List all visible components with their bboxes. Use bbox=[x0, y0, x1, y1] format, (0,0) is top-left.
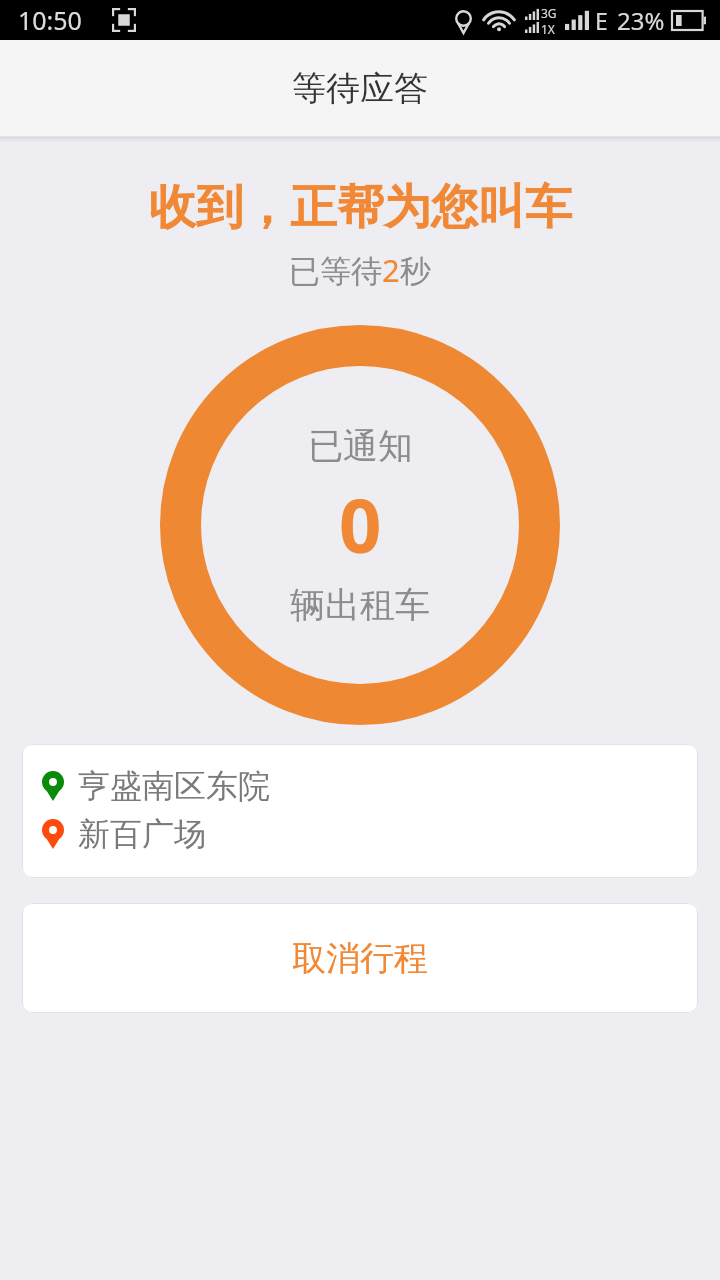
staticText: 已通知 bbox=[308, 424, 413, 468]
button[interactable]: 取消行程 bbox=[22, 903, 698, 1013]
staticText: 新百广场 bbox=[78, 814, 206, 854]
staticText: 1X bbox=[541, 21, 555, 37]
staticText: 辆出租车 bbox=[290, 583, 430, 627]
staticText: 收到，正帮为您叫车 bbox=[149, 178, 572, 237]
staticText: E bbox=[595, 5, 608, 36]
staticText: 已等待2秒 bbox=[289, 249, 431, 291]
staticText: 取消行程 bbox=[292, 937, 428, 980]
staticText: 10:50 bbox=[18, 3, 82, 37]
staticText: 亨盛南区东院 bbox=[78, 766, 270, 806]
staticText: 3G bbox=[541, 5, 557, 21]
staticText: 0 bbox=[339, 474, 382, 575]
staticText: 23% bbox=[617, 4, 665, 37]
staticText: 等待应答 bbox=[292, 67, 428, 110]
button[interactable]: 亨盛南区东院 bbox=[22, 744, 698, 878]
